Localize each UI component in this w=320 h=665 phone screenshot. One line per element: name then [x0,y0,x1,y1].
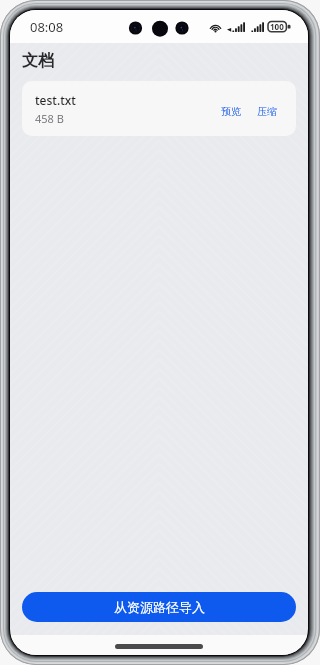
staticText: 458 B [35,111,64,126]
staticText: 压缩 [257,105,277,118]
button[interactable]: test.txt [22,81,296,136]
staticText: test.txt [35,92,76,108]
staticText: 预览 [221,105,241,118]
button[interactable]: 压缩 [252,99,282,124]
staticText: 08:08 [30,18,64,36]
staticText: 从资源路径导入 [114,599,205,615]
button[interactable]: 预览 [216,99,246,124]
button[interactable]: 从资源路径导入 [22,592,296,622]
staticText: 文档 [22,51,54,71]
staticText: 100 [270,21,284,32]
